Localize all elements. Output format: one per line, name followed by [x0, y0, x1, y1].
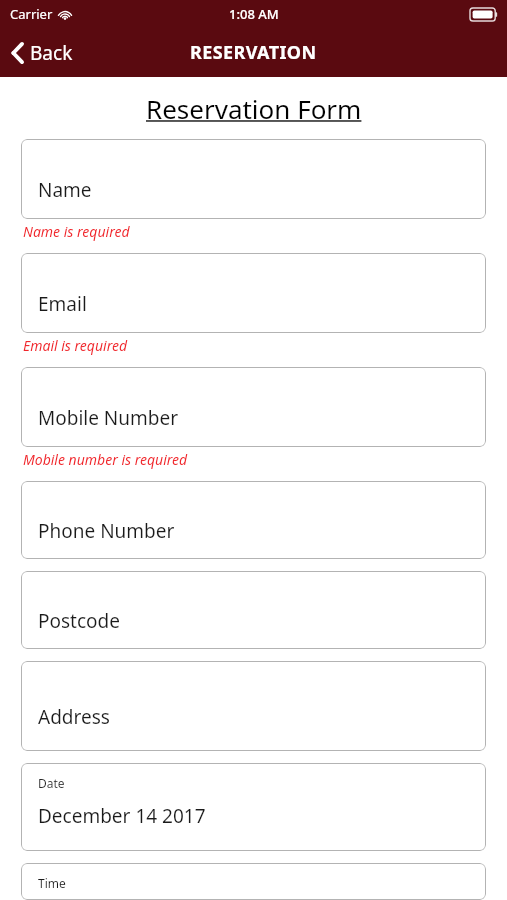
staticText: Mobile Number — [38, 405, 179, 431]
staticText: Time — [38, 875, 66, 891]
button[interactable]: Date — [21, 763, 486, 851]
button[interactable]: Postcode — [21, 571, 486, 649]
button[interactable]: Back — [0, 28, 85, 77]
staticText: Email — [38, 291, 87, 317]
button[interactable]: Name — [21, 139, 486, 219]
button[interactable]: Email — [21, 253, 486, 333]
button[interactable]: Mobile Number — [21, 367, 486, 447]
staticText: Email is required — [23, 336, 128, 355]
staticText: Postcode — [38, 608, 120, 634]
staticText: RESERVATION — [190, 40, 317, 65]
staticText: Phone Number — [38, 518, 175, 544]
staticText: Reservation Form — [146, 91, 362, 126]
staticText: Name — [38, 177, 92, 203]
staticText: Back — [30, 40, 73, 66]
staticText: 1:08 AM — [229, 5, 279, 23]
button[interactable]: Phone Number — [21, 481, 486, 559]
staticText: Date — [38, 775, 65, 791]
button[interactable]: Address — [21, 661, 486, 751]
button[interactable]: Time — [21, 863, 486, 900]
staticText: Address — [38, 704, 110, 730]
staticText: Name is required — [23, 222, 130, 241]
staticText: Carrier — [10, 5, 53, 23]
staticText: December 14 2017 — [38, 803, 206, 829]
staticText: Mobile number is required — [23, 450, 188, 469]
